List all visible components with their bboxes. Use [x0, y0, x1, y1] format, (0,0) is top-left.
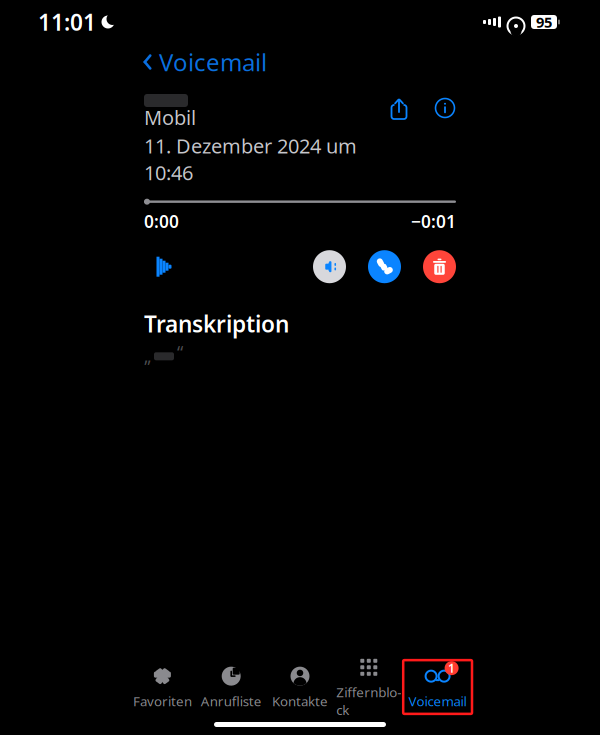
staticText: 95: [536, 12, 552, 32]
staticText: 11. Dezember 2024 um 10:46: [144, 133, 357, 186]
staticText: Voicemail: [159, 46, 267, 78]
staticText: Transkription: [144, 309, 289, 339]
button[interactable]: Lautsprecher: [313, 250, 346, 283]
button[interactable]: Anrufen: [368, 250, 401, 283]
staticText: Favoriten: [133, 692, 192, 710]
staticText: Anrufliste: [201, 692, 262, 710]
button[interactable]: Anrufliste: [197, 660, 266, 714]
staticText: „: [144, 345, 151, 368]
button[interactable]: Voicemail: [140, 40, 269, 84]
staticText: Voicemail: [409, 692, 467, 710]
button[interactable]: Favoriten: [128, 660, 197, 714]
button[interactable]: Löschen: [423, 250, 456, 283]
staticText: 1: [448, 660, 455, 676]
staticText: −0:01: [411, 210, 456, 233]
button[interactable]: Wiedergabe: [144, 247, 184, 287]
button[interactable]: Informationen: [434, 96, 456, 120]
staticText: “: [177, 341, 183, 364]
staticText: 11:01: [38, 7, 96, 37]
staticText: 0:00: [144, 210, 179, 233]
staticText: Kontakte: [272, 692, 328, 710]
button[interactable]: Ziffernblock: [334, 651, 403, 723]
staticText: Mobil: [144, 104, 196, 131]
button[interactable]: Teilen: [388, 96, 410, 120]
button[interactable]: Kontakte: [266, 660, 334, 714]
staticText: Ziffernblock: [336, 683, 401, 719]
button[interactable]: 1: [403, 660, 472, 714]
